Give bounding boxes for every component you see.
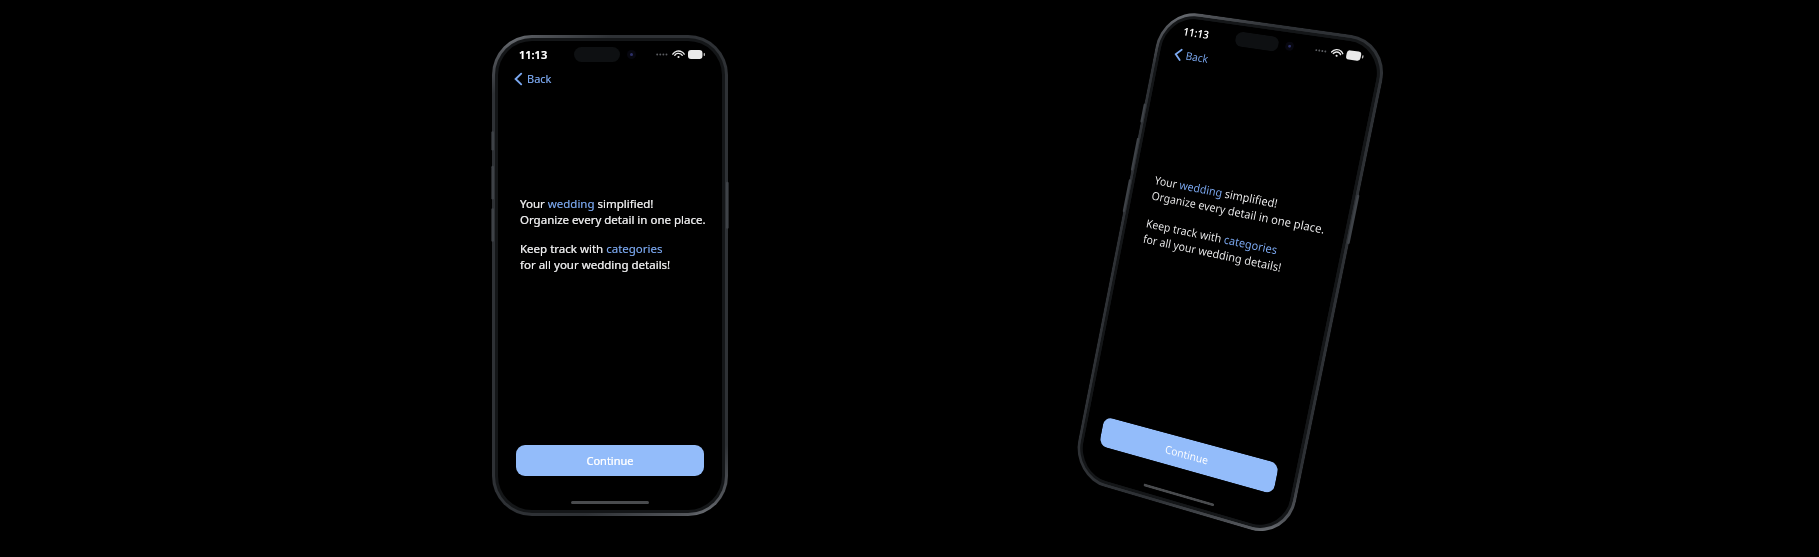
staticText: Continue — [586, 453, 634, 468]
button[interactable]: Back — [1169, 43, 1214, 69]
staticText: Your wedding simplified! — [520, 196, 654, 212]
button[interactable]: Back — [510, 68, 556, 89]
staticText: Your wedding simplified! — [1153, 172, 1280, 212]
staticText: 11:13 — [519, 47, 548, 62]
staticText: for all your wedding details! — [520, 257, 671, 273]
staticText: Continue — [1163, 441, 1210, 468]
staticText: Keep track with categories — [1145, 216, 1279, 258]
button[interactable]: Continue — [1099, 416, 1279, 494]
staticText: Back — [1185, 48, 1210, 66]
staticText: 11:13 — [1182, 23, 1211, 42]
button[interactable]: Continue — [516, 445, 704, 476]
staticText: Back — [527, 71, 552, 86]
staticText: Keep track with categories — [520, 241, 663, 257]
staticText: for all your wedding details! — [1142, 231, 1283, 276]
staticText: Organize every detail in one place. — [520, 212, 706, 228]
staticText: Organize every detail in one place. — [1150, 188, 1327, 238]
